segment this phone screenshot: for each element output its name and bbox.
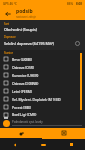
staticText: Podrobnosti cyst. brzdy	[12, 120, 43, 124]
button[interactable]: Back	[0, 7, 85, 20]
staticText: Pocest (MB)	[12, 105, 31, 110]
staticText: podsib	[16, 8, 33, 15]
staticText: GPS 46 °C	[3, 2, 17, 6]
button[interactable]: Pocest (MB)	[4, 103, 85, 111]
button[interactable]: List	[42, 128, 85, 138]
button[interactable]: Home	[29, 139, 57, 150]
button[interactable]: Map	[0, 128, 42, 138]
staticText: Kunovice (UHER)	[12, 73, 39, 78]
staticText: Sort	[4, 22, 10, 26]
staticText: Sekční doprava (64195 Měř)	[4, 41, 74, 46]
staticText: Ostrava II (MNB)	[12, 81, 39, 86]
button[interactable]: Podrobnosti cyst. brzdy	[3, 118, 82, 128]
button[interactable]: Ostrava II (MNB)	[4, 79, 85, 87]
button[interactable]: Ostrava (OSR)	[4, 63, 85, 71]
button[interactable]: Letní (PERM)	[4, 87, 85, 95]
staticText: Obchodni (Soupis)	[4, 27, 38, 32]
button[interactable]: Kunovice (UHER)	[4, 71, 85, 79]
staticText: nastaveni zdroje	[16, 15, 36, 19]
button[interactable]: Obchodni (Soupis)	[4, 27, 81, 32]
staticText: Brno (LKMB)	[12, 57, 32, 62]
staticText: 8:08	[76, 2, 82, 6]
button[interactable]: Refresh	[74, 40, 81, 47]
staticText: Bonf.Ligi (CMR)	[12, 112, 37, 117]
button[interactable]: Back	[0, 139, 29, 150]
button[interactable]: Vel. Mysleni. Doplatek (M 9 BE)	[4, 95, 85, 103]
staticText: Stanice	[4, 51, 13, 55]
staticText: Dopravce	[4, 35, 16, 39]
button[interactable]: Sekční doprava (64195 Měř)	[4, 40, 81, 47]
staticText: Letní (PERM)	[12, 89, 32, 94]
button[interactable]: Bonf.Ligi (CMR)	[4, 111, 85, 118]
button[interactable]: Recents	[57, 139, 85, 150]
staticText: 86%	[67, 2, 73, 6]
staticText: Vel. Mysleni. Doplatek (M 9 BE)	[12, 97, 61, 102]
staticText: Ostrava (OSR)	[12, 65, 34, 70]
button[interactable]: Brno (LKMB)	[4, 55, 85, 63]
button[interactable]: Back	[3, 9, 12, 18]
